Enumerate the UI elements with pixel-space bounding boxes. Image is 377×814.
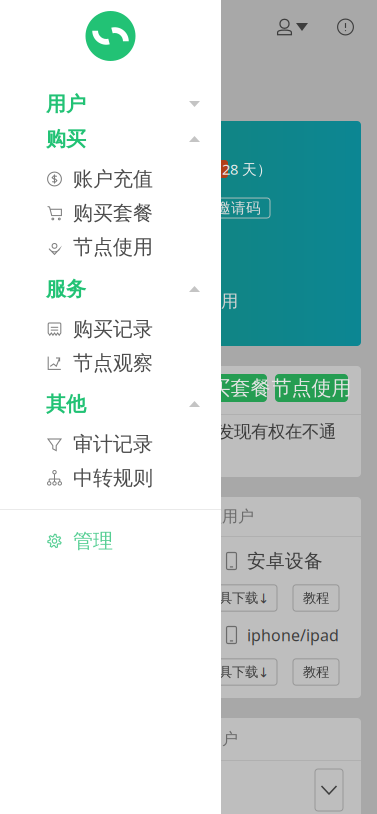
button[interactable]: 管理 [0,524,221,558]
staticText: 购买记录 [73,317,153,341]
staticText: 其他 [46,392,86,416]
staticText: 教程 [303,590,329,606]
staticText: 节点观察 [73,351,153,375]
button[interactable]: 服务 [0,272,221,306]
staticText: 节点使用 [73,235,153,259]
staticText: 用户 [46,92,86,116]
button[interactable]: 购买套餐 [194,374,267,402]
button[interactable]: 节点使用 [0,230,221,264]
staticText: 安卓设备 [247,549,323,572]
button[interactable]: 用户 [0,87,221,121]
button[interactable]: Expand [315,769,343,811]
staticText: 工具下载↓ [206,590,269,606]
button[interactable]: 审计记录 [0,427,221,461]
staticText: 账户充值 [73,167,153,191]
button[interactable]: 教程 [293,659,339,685]
staticText: iphone/ipad [247,624,339,646]
button[interactable]: 购买 [0,122,221,156]
button[interactable]: Notice [333,7,358,47]
staticText: 禁止一切违规行为，一经发现有权在不通 [30,421,336,442]
staticText: 审计记录 [73,432,153,456]
button[interactable]: 其他 [0,387,221,421]
button[interactable]: 工具下载↓ [198,659,277,685]
button[interactable]: 中转规则 [0,461,221,495]
staticText: 剩余流量：128.60 GB 可用 [30,289,238,312]
staticText: 邀请码 [216,199,261,217]
staticText: 当前套餐：高级月付（剩余 28 天） [38,159,272,179]
staticText: 购买套餐 [190,376,270,400]
button[interactable]: 邀请码 [207,198,270,218]
button[interactable]: Account [273,7,312,47]
staticText: 购买 [46,127,86,151]
staticText: 中转规则 [73,466,153,490]
button[interactable]: 节点观察 [0,346,221,380]
staticText: 适合日常网页浏览的普通用户 [30,729,238,749]
button[interactable]: 账户充值 [0,162,221,196]
button[interactable]: 工具下载↓ [198,585,277,611]
button[interactable]: 账户充值 [32,374,105,402]
button[interactable]: 教程 [293,585,339,611]
staticText: 服务 [46,277,86,301]
staticText: 购买套餐 [73,201,153,225]
staticText: 适合看视频、打游戏的高频用户 [30,507,254,526]
staticText: 管理 [73,529,113,553]
button[interactable]: 节点使用 [275,374,348,402]
button[interactable]: 购买记录 [0,312,221,346]
staticText: 节点使用 [271,376,351,400]
staticText: 账户充值 [28,376,108,400]
staticText: 教程 [303,664,329,680]
button[interactable]: 购买套餐 [0,196,221,230]
staticText: 工具下载↓ [206,664,269,680]
